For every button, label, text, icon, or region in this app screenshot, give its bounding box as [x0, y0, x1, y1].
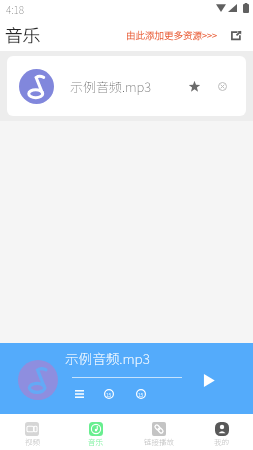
button[interactable]: Now playing cover	[18, 360, 58, 400]
staticText: 链接播放	[144, 436, 174, 447]
button[interactable]: Playlist	[70, 385, 88, 403]
staticText: 我的	[214, 436, 229, 447]
staticText: 视频	[25, 436, 40, 447]
button[interactable]: Remove	[211, 75, 233, 97]
button[interactable]: Rewind 15 seconds	[100, 385, 118, 403]
button[interactable]: 音乐	[64, 414, 127, 450]
button[interactable]: Play	[197, 368, 221, 392]
staticText: 15	[106, 391, 112, 398]
staticText: 4:18	[6, 2, 24, 16]
button[interactable]: 视频	[0, 414, 64, 450]
staticText: 由此添加更多资源>>>	[126, 28, 217, 42]
button[interactable]: Forward 15 seconds	[132, 385, 150, 403]
staticText: 示例音频.mp3	[70, 77, 152, 96]
staticText: 音乐	[5, 22, 40, 47]
button[interactable]: 我的	[190, 414, 253, 450]
staticText: 15	[138, 391, 144, 398]
staticText: 示例音频.mp3	[65, 348, 150, 368]
button[interactable]: 由此添加更多资源>>>	[126, 24, 217, 46]
button[interactable]: Favorite	[183, 75, 205, 97]
button[interactable]: 示例音频.mp3	[7, 56, 246, 116]
staticText: 音乐	[88, 436, 103, 447]
button[interactable]: Add more resources	[228, 28, 243, 43]
button[interactable]: 链接播放	[127, 414, 190, 450]
